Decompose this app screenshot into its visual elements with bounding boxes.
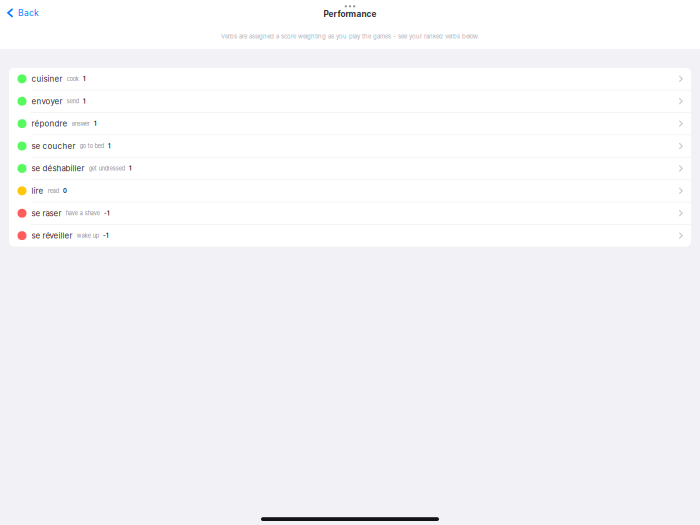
staticText: cuisiner bbox=[31, 74, 62, 84]
staticText: se réveiller bbox=[31, 231, 72, 240]
staticText: 0 bbox=[63, 187, 67, 194]
staticText: 1 bbox=[129, 165, 131, 172]
staticText: read bbox=[48, 187, 59, 194]
staticText: Performance bbox=[323, 9, 376, 19]
button[interactable]: envoyer bbox=[9, 90, 691, 112]
button[interactable]: cuisiner bbox=[9, 68, 691, 90]
staticText: se raser bbox=[31, 208, 61, 218]
staticText: 1 bbox=[108, 142, 110, 150]
staticText: -1 bbox=[103, 232, 108, 239]
staticText: answer bbox=[72, 120, 90, 127]
button[interactable]: se raser bbox=[9, 202, 691, 224]
staticText: 1 bbox=[83, 98, 85, 105]
staticText: wake up bbox=[77, 232, 99, 239]
staticText: répondre bbox=[31, 119, 67, 128]
staticText: se déshabiller bbox=[31, 164, 84, 173]
staticText: 1 bbox=[83, 75, 85, 82]
button[interactable]: se déshabiller bbox=[9, 158, 691, 179]
button[interactable]: Back bbox=[0, 0, 39, 18]
staticText: send bbox=[67, 98, 79, 105]
staticText: envoyer bbox=[31, 96, 62, 106]
button[interactable]: se coucher bbox=[9, 135, 691, 157]
button[interactable]: répondre bbox=[9, 113, 691, 134]
staticText: have a shave bbox=[66, 210, 100, 217]
staticText: Verbs are assigned a score weighting as … bbox=[221, 33, 479, 40]
staticText: Back bbox=[18, 8, 39, 18]
staticText: get undressed bbox=[89, 165, 125, 172]
staticText: se coucher bbox=[31, 141, 75, 151]
staticText: lire bbox=[31, 186, 43, 196]
staticText: cook bbox=[67, 75, 79, 82]
staticText: 1 bbox=[94, 120, 96, 127]
staticText: go to bed bbox=[80, 143, 104, 149]
staticText: -1 bbox=[104, 210, 109, 217]
button[interactable]: se réveiller bbox=[9, 225, 691, 246]
button[interactable]: lire bbox=[9, 180, 691, 202]
